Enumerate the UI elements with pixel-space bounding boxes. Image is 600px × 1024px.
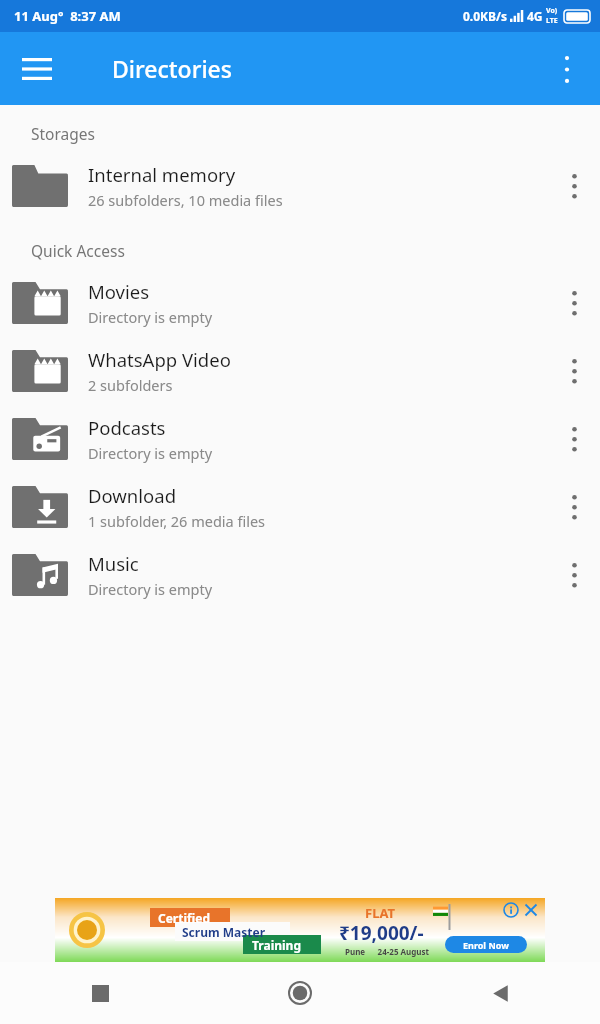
staticText: WhatsApp Video xyxy=(88,347,231,372)
staticText: FLAT xyxy=(365,904,395,922)
button[interactable]: Internal memory xyxy=(0,152,600,220)
staticText: Movies xyxy=(88,279,150,304)
staticText: Directory is empty xyxy=(88,443,213,463)
button[interactable]: More options for WhatsApp Video xyxy=(548,337,600,405)
button[interactable]: Movies xyxy=(0,269,600,337)
staticText: 26 subfolders, 10 media files xyxy=(88,190,283,210)
staticText: Training xyxy=(252,937,301,953)
staticText: 0.0KB/s xyxy=(463,8,508,24)
button[interactable]: Open navigation menu xyxy=(14,46,60,92)
button[interactable]: Download xyxy=(0,473,600,541)
staticText: Podcasts xyxy=(88,415,166,440)
staticText: 11 Aug° 8:37 AM xyxy=(14,7,121,25)
button[interactable]: More options for Internal memory xyxy=(548,152,600,220)
staticText: Directory is empty xyxy=(88,307,213,327)
staticText: Scrum Master xyxy=(182,924,266,940)
staticText: Enrol Now xyxy=(463,939,509,951)
staticText: 1 subfolder, 26 media files xyxy=(88,511,266,531)
other: Close ad xyxy=(523,902,539,918)
button[interactable]: More options for Podcasts xyxy=(548,405,600,473)
button[interactable]: WhatsApp Video xyxy=(0,337,600,405)
button[interactable]: Home xyxy=(200,962,400,1024)
button[interactable]: More options for Movies xyxy=(548,269,600,337)
staticText: Directory is empty xyxy=(88,579,213,599)
button[interactable]: More options for Download xyxy=(548,473,600,541)
staticText: 2 subfolders xyxy=(88,375,173,395)
button[interactable]: Podcasts xyxy=(0,405,600,473)
staticText: ₹19,000/- xyxy=(339,920,424,946)
staticText: Directories xyxy=(112,53,232,84)
button[interactable]: Advertisement: Certified Scrum Master Tr… xyxy=(55,898,545,962)
other: Ad information xyxy=(503,902,519,918)
button[interactable]: More options for Music xyxy=(548,541,600,609)
staticText: Internal memory xyxy=(88,162,236,187)
staticText: Vo) xyxy=(546,6,558,16)
staticText: Pune 24-25 August xyxy=(345,946,430,957)
staticText: Storages xyxy=(31,123,95,144)
staticText: Download xyxy=(88,483,177,508)
staticText: 4G xyxy=(527,8,543,24)
staticText: Music xyxy=(88,551,139,576)
staticText: Certified xyxy=(158,910,210,926)
staticText: LTE xyxy=(546,16,558,26)
button[interactable]: Back xyxy=(400,962,600,1024)
staticText: Quick Access xyxy=(31,240,125,261)
button[interactable]: More options xyxy=(544,46,590,92)
button[interactable]: Music xyxy=(0,541,600,609)
button[interactable]: Recent apps xyxy=(0,962,200,1024)
